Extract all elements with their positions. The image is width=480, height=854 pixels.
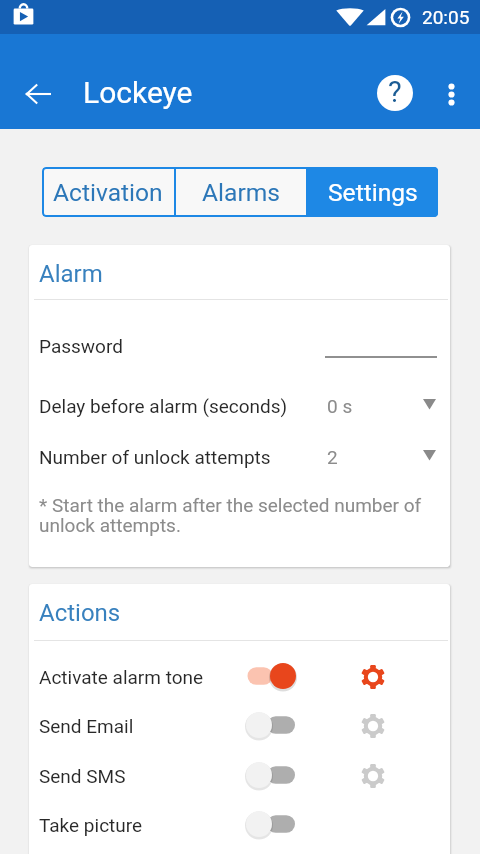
staticText: Delay before alarm (seconds)	[39, 395, 288, 417]
staticText: Activate alarm tone	[39, 666, 204, 688]
staticText: Number of unlock attempts	[39, 446, 271, 468]
button[interactable]: More options	[429, 72, 473, 116]
button[interactable]: Settings	[308, 167, 438, 217]
button[interactable]: Toggle Take picture	[243, 806, 299, 842]
staticText: 2	[327, 446, 338, 468]
staticText: 20:05	[422, 6, 470, 28]
button[interactable]: Configure Send Email	[351, 707, 395, 743]
staticText: Actions	[39, 599, 121, 627]
staticText: Alarm	[39, 260, 103, 288]
staticText: 0 s	[327, 395, 353, 417]
staticText: * Start the alarm after the selected num…	[39, 494, 422, 537]
button[interactable]	[29, 381, 450, 425]
staticText: Alarms	[202, 178, 280, 207]
staticText: Send Email	[39, 715, 134, 737]
staticText: Take picture	[39, 814, 143, 836]
button[interactable]: Toggle Send Email	[243, 707, 299, 743]
button[interactable]: Configure Send SMS	[351, 757, 395, 793]
button[interactable]: Configure Activate alarm tone	[351, 658, 395, 694]
staticText: Activation	[53, 178, 163, 207]
staticText: Lockeye	[83, 75, 193, 110]
button[interactable]: Toggle Send SMS	[243, 757, 299, 793]
button[interactable]: Toggle Activate alarm tone	[243, 658, 299, 694]
staticText: ?	[388, 75, 402, 109]
button[interactable]: Activation	[42, 167, 174, 217]
staticText: Password	[39, 335, 123, 357]
staticText: Settings	[328, 178, 418, 207]
button[interactable]: Alarms	[176, 167, 306, 217]
staticText: Send SMS	[39, 765, 126, 787]
button[interactable]: Help	[371, 69, 419, 117]
button[interactable]: Back	[15, 71, 61, 117]
button[interactable]	[29, 432, 450, 476]
